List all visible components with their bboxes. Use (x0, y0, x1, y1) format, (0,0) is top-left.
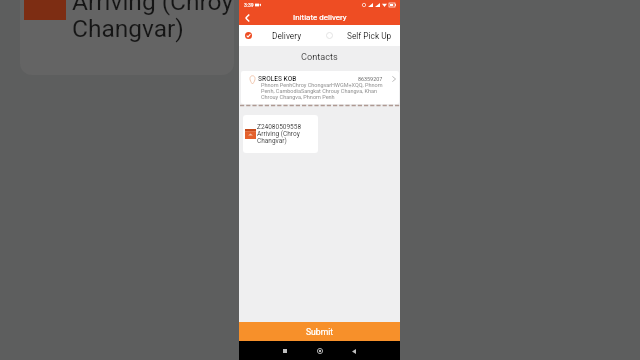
staticText: 86359207 (358, 76, 383, 82)
staticText: Contacts (301, 51, 338, 62)
staticText: Initiate delivery (293, 13, 347, 22)
button[interactable]: Home (313, 344, 327, 358)
button[interactable]: Recent apps (278, 344, 292, 358)
button[interactable]: Submit (239, 322, 400, 341)
staticText: Z24080509558 Arriving (Chroy Changvar) (72, 0, 234, 43)
staticText: SROLES KOB (258, 75, 297, 83)
button[interactable]: Back (241, 12, 253, 24)
staticText: Self Pick Up (347, 31, 392, 41)
button[interactable]: Z24080509558 Arriving (Chroy Changvar) (243, 115, 318, 153)
staticText: 3:39 (244, 2, 254, 8)
button[interactable]: SROLES KOB (241, 71, 399, 104)
staticText: Delivery (272, 31, 302, 41)
staticText: Submit (306, 327, 334, 337)
staticText: Phnom PenhChroy ChongvarHWGM+XQQ, Phnom … (261, 82, 385, 100)
staticText: Z24080509558 Arriving (Chroy Changvar) (257, 123, 315, 144)
button[interactable]: Delivery (239, 25, 324, 46)
button[interactable]: Self Pick Up (324, 25, 400, 46)
button[interactable]: Back (347, 344, 361, 358)
